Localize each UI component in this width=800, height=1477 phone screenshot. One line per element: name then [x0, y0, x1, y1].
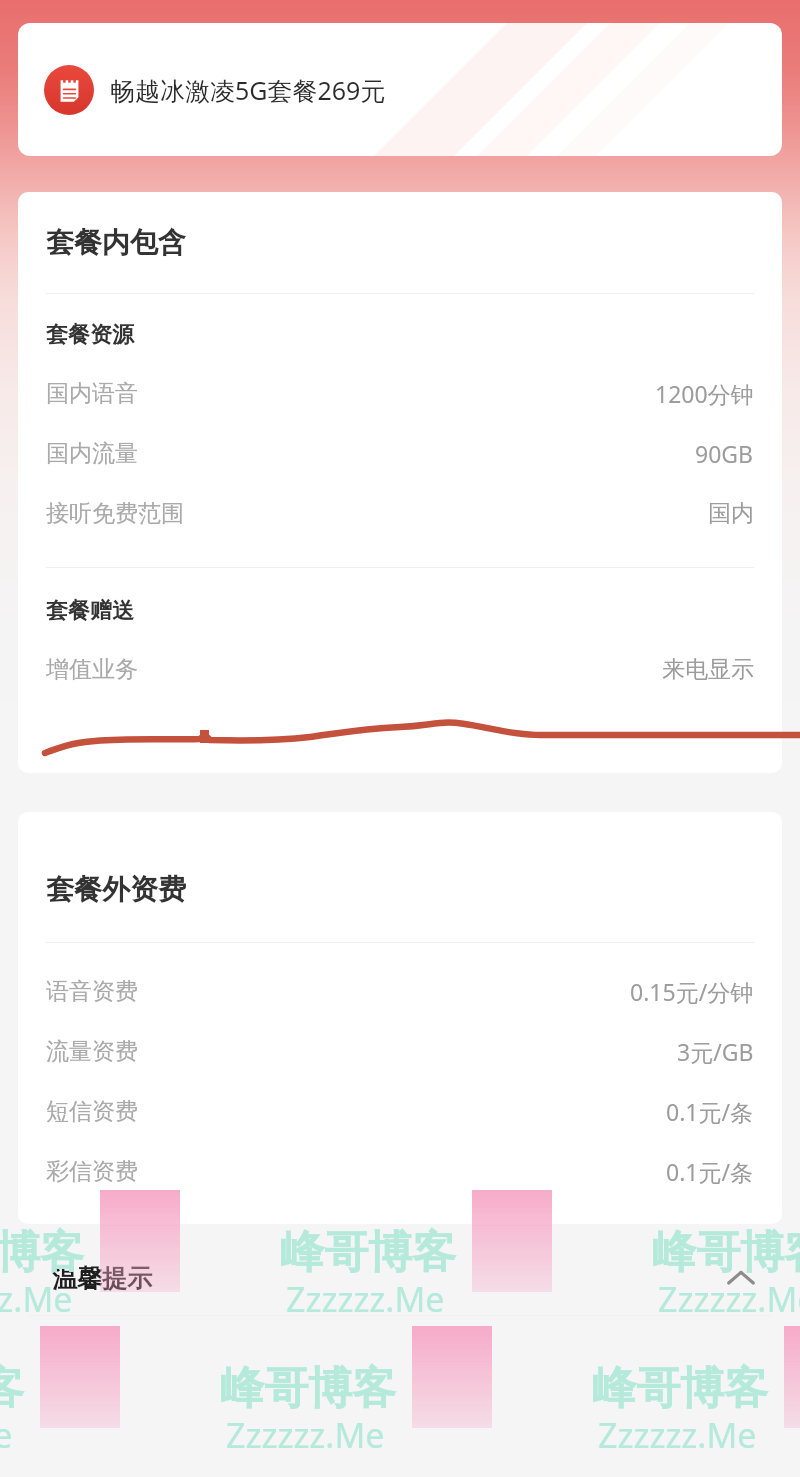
- staticText: 峰哥博客: [220, 1361, 396, 1416]
- staticText: 温馨提示: [52, 1263, 152, 1294]
- staticText: 流量资费: [46, 1037, 138, 1066]
- staticText: 套餐资源: [46, 321, 134, 349]
- staticText: 3元/GB: [677, 1036, 754, 1067]
- staticText: 彩信资费: [46, 1157, 138, 1186]
- staticText: 0.1元/条: [666, 1156, 754, 1187]
- staticText: 语音资费: [46, 977, 138, 1006]
- staticText: 峰哥博客: [0, 1225, 84, 1280]
- other: Collapse tips: [724, 1261, 758, 1295]
- staticText: 套餐赠送: [46, 597, 134, 625]
- staticText: 峰哥博客: [592, 1361, 768, 1416]
- staticText: 国内: [708, 499, 754, 528]
- staticText: 增值业务: [46, 655, 138, 684]
- staticText: Zzzzzz.Me: [286, 1276, 445, 1322]
- staticText: 峰哥博客: [280, 1225, 456, 1280]
- staticText: 畅越冰激凌5G套餐269元: [110, 73, 386, 107]
- staticText: 套餐内包含: [46, 225, 186, 260]
- staticText: 套餐外资费: [46, 872, 186, 907]
- staticText: 0.15元/分钟: [630, 976, 754, 1007]
- staticText: 接听免费范围: [46, 499, 184, 528]
- button[interactable]: 畅越冰激凌5G套餐269元: [18, 23, 782, 156]
- staticText: 峰哥博客: [652, 1225, 800, 1280]
- staticText: 0.1元/条: [666, 1096, 754, 1127]
- staticText: Zzzzzz.Me: [226, 1412, 385, 1458]
- staticText: 来电显示: [662, 655, 754, 684]
- staticText: 峰哥博客: [0, 1361, 24, 1416]
- staticText: Zzzzzz.Me: [598, 1412, 757, 1458]
- staticText: Zzzzzz.Me: [0, 1412, 13, 1458]
- staticText: 国内流量: [46, 439, 138, 468]
- staticText: 90GB: [695, 438, 754, 469]
- staticText: Zzzzzz.Me: [658, 1276, 800, 1322]
- staticText: 1200分钟: [655, 378, 754, 409]
- staticText: 国内语音: [46, 379, 138, 408]
- staticText: Zzzzzz.Me: [0, 1276, 73, 1322]
- button[interactable]: 温馨提示: [0, 1240, 800, 1316]
- staticText: 短信资费: [46, 1097, 138, 1126]
